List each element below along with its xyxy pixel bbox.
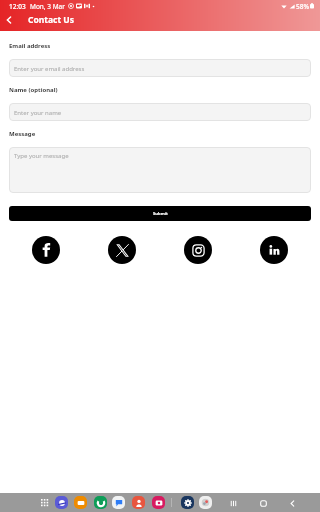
button[interactable]: Back: [2, 13, 16, 27]
button[interactable]: LinkedIn: [260, 236, 288, 264]
staticText: Enter your name: [14, 109, 62, 117]
staticText: 58%: [296, 2, 309, 11]
button[interactable]: Enter your email address: [9, 59, 311, 77]
button[interactable]: Camera: [152, 496, 165, 509]
staticText: Mon, 3 Mar: [30, 2, 65, 11]
staticText: 12:03: [9, 2, 26, 11]
button[interactable]: X: [108, 236, 136, 264]
button[interactable]: Back: [285, 496, 299, 510]
staticText: Message: [9, 130, 36, 138]
staticText: Type your message: [14, 152, 69, 160]
button[interactable]: Enter your name: [9, 103, 311, 121]
button[interactable]: Recents: [226, 496, 240, 510]
staticText: Enter your email address: [14, 65, 85, 73]
staticText: Name (optional): [9, 86, 58, 94]
button[interactable]: Browser: [55, 496, 68, 509]
button[interactable]: Gallery: [199, 496, 212, 509]
button[interactable]: Facebook: [32, 236, 60, 264]
button[interactable]: Settings: [181, 496, 194, 509]
button[interactable]: Messages: [112, 496, 125, 509]
button[interactable]: Instagram: [184, 236, 212, 264]
button[interactable]: All apps: [38, 496, 51, 509]
button[interactable]: Contacts: [132, 496, 145, 509]
button[interactable]: Phone: [94, 496, 107, 509]
button[interactable]: Files: [74, 496, 87, 509]
button[interactable]: Home: [256, 496, 270, 510]
staticText: Contact Us: [28, 14, 75, 26]
button[interactable]: Submit: [9, 206, 311, 221]
button[interactable]: Type your message: [9, 147, 311, 193]
staticText: Submit: [153, 211, 168, 217]
staticText: Email address: [9, 42, 51, 50]
